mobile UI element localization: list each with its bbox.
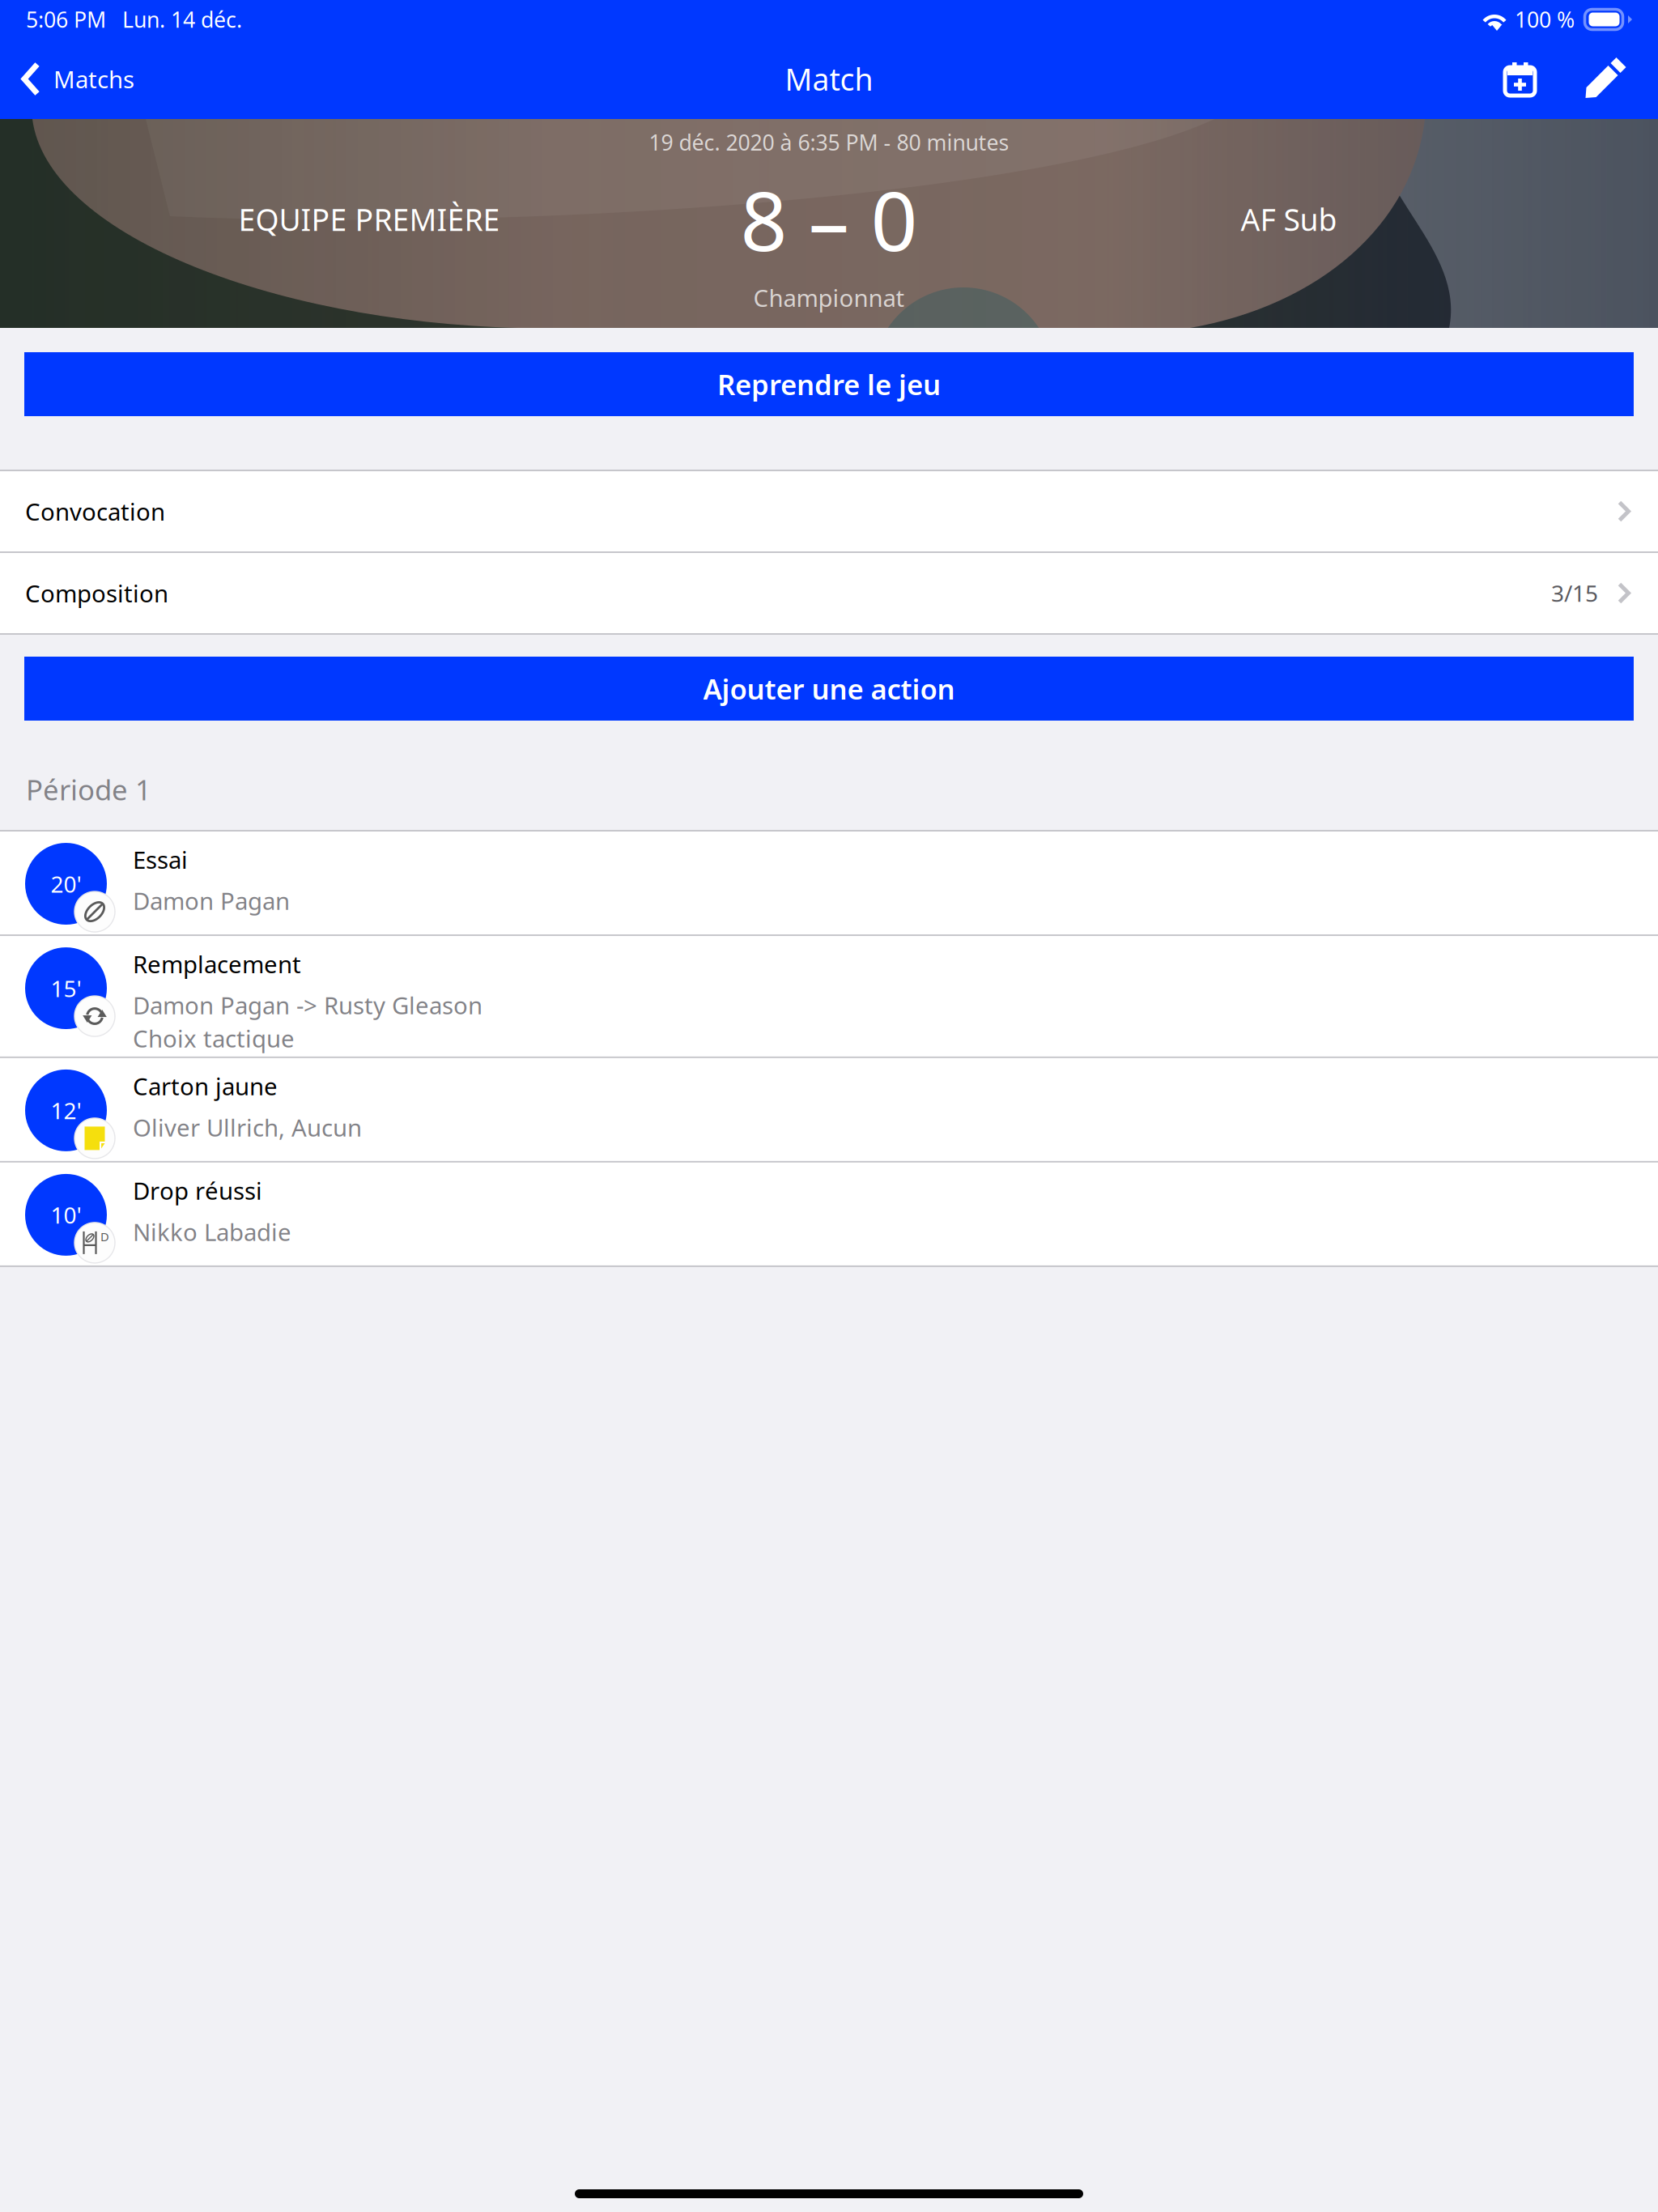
button[interactable]: Convocation [0,471,1658,551]
button[interactable]: Ajouter une action [24,657,1634,721]
button[interactable]: 12' [0,1058,1658,1161]
staticText: AF Sub [1241,199,1337,239]
staticText: Choix tactique [133,1023,295,1054]
staticText: Nikko Labadie [133,1216,291,1248]
button[interactable]: 20' [0,832,1658,934]
staticText: Reprendre le jeu [717,366,941,403]
staticText: Match [785,59,873,99]
staticText: 15' [51,973,81,1003]
staticText: Championnat [753,282,905,313]
staticText: D [100,1229,109,1245]
staticText: 19 déc. 2020 à 6:35 PM - 80 minutes [649,128,1009,157]
staticText: Essai [133,844,188,875]
button[interactable]: Add to calendar [1489,43,1572,115]
staticText: 3/15 [1551,578,1598,608]
staticText: 10' [51,1200,81,1230]
button[interactable]: Composition [0,553,1658,633]
staticText: 5:06 PM [26,5,106,34]
staticText: Composition [25,577,168,609]
staticText: 12' [51,1095,81,1125]
staticText: Damon Pagan [133,885,290,917]
staticText: 20' [51,869,81,899]
button[interactable]: Matchs [0,43,149,115]
staticText: Lun. 14 déc. [122,5,242,34]
staticText: Carton jaune [133,1070,278,1102]
button[interactable]: Reprendre le jeu [24,352,1634,416]
button[interactable]: 10' [0,1163,1658,1265]
staticText: Remplacement [133,948,301,980]
staticText: 100 % [1515,5,1575,34]
staticText: Ajouter une action [703,670,955,707]
staticText: EQUIPE PREMIÈRE [238,199,500,239]
button[interactable]: 15' [0,936,1658,1057]
staticText: 8 – 0 [740,165,918,274]
staticText: Période 1 [26,771,151,808]
staticText: Drop réussi [133,1175,262,1206]
staticText: Matchs [53,63,134,95]
staticText: Damon Pagan -> Rusty Gleason [133,989,483,1021]
button[interactable]: Edit [1572,43,1639,115]
staticText: Convocation [25,496,165,527]
staticText: Oliver Ullrich, Aucun [133,1112,362,1143]
